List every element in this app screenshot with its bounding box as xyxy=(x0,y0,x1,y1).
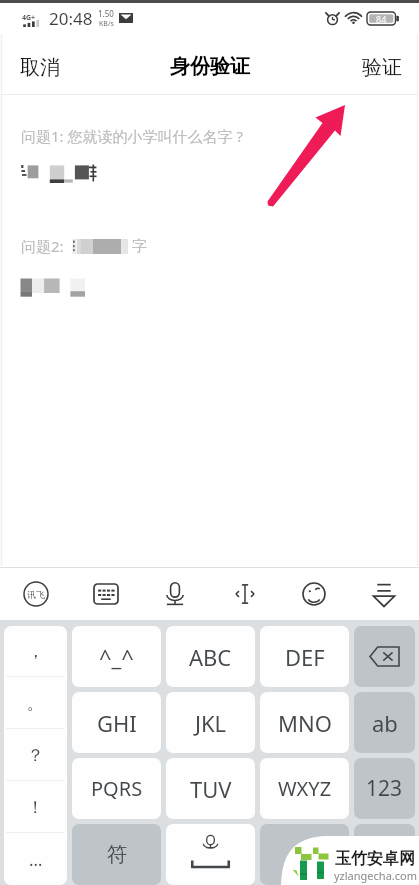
button[interactable]: JKL xyxy=(166,692,255,753)
button[interactable]: Hide keyboard xyxy=(361,569,407,619)
button[interactable]: ABC xyxy=(166,626,255,687)
button[interactable]: Input method xyxy=(13,569,59,619)
button[interactable]: ， xyxy=(4,626,67,677)
staticText: ABC xyxy=(189,642,232,672)
staticText: 问题2: xyxy=(21,236,64,256)
button[interactable]: 符 xyxy=(72,824,161,885)
button[interactable]: ！ xyxy=(4,781,67,833)
button[interactable]: MNO xyxy=(260,692,349,753)
staticText: 玉竹安卓网 xyxy=(335,849,415,869)
staticText: GHI xyxy=(97,708,137,738)
staticText: ？ xyxy=(27,745,44,766)
button[interactable]: GHI xyxy=(72,692,161,753)
button[interactable]: TUV xyxy=(166,758,255,819)
button[interactable]: ？ xyxy=(4,729,67,781)
staticText: ！ xyxy=(27,797,44,818)
button[interactable]: Backspace xyxy=(354,626,415,687)
staticText: ， xyxy=(27,641,44,662)
staticText: 123 xyxy=(366,774,403,803)
staticText: ^_^ xyxy=(99,642,134,672)
staticText: KB/s xyxy=(99,19,114,29)
staticText: 验证 xyxy=(362,55,402,80)
staticText: 符 xyxy=(107,842,127,867)
button[interactable]: ^_^ xyxy=(72,626,161,687)
staticText: PQRS xyxy=(91,775,143,802)
button[interactable]: … xyxy=(4,833,67,885)
staticText: … xyxy=(29,848,43,871)
button[interactable] xyxy=(260,824,349,885)
staticText: 4G+ xyxy=(22,13,36,23)
staticText: 讯飞 xyxy=(27,589,45,600)
button[interactable]: Keyboard xyxy=(83,569,129,619)
button[interactable]: 取消 xyxy=(0,36,81,93)
button[interactable]: 验证 xyxy=(341,36,419,93)
staticText: WXYZ xyxy=(278,775,332,802)
staticText: JKL xyxy=(195,708,227,738)
button[interactable]: Cursor control xyxy=(222,569,268,619)
staticText: 字 xyxy=(132,237,147,256)
staticText: 1.50 xyxy=(98,8,114,19)
button[interactable] xyxy=(354,824,415,885)
staticText: ab xyxy=(372,708,398,738)
staticText: TUV xyxy=(190,774,232,804)
button[interactable]: Space xyxy=(166,824,255,885)
button[interactable]: ab xyxy=(354,692,415,753)
staticText: DEF xyxy=(285,642,325,672)
button[interactable]: 123 xyxy=(354,758,415,819)
button[interactable]: DEF xyxy=(260,626,349,687)
button[interactable]: 。 xyxy=(4,677,67,729)
staticText: 问题1: 您就读的小学叫什么名字 ? xyxy=(21,126,243,146)
button[interactable]: WXYZ xyxy=(260,758,349,819)
staticText: 身份验证 xyxy=(170,54,250,79)
staticText: 取消 xyxy=(20,55,60,80)
button[interactable]: PQRS xyxy=(72,758,161,819)
staticText: 。 xyxy=(27,693,44,714)
staticText: 84 xyxy=(376,13,387,25)
staticText: MNO xyxy=(278,708,332,738)
button[interactable]: Emoji xyxy=(291,569,337,619)
staticText: yzlangecha.com xyxy=(334,868,417,883)
button[interactable]: Voice input xyxy=(152,569,198,619)
staticText: 20:48 xyxy=(49,7,93,30)
